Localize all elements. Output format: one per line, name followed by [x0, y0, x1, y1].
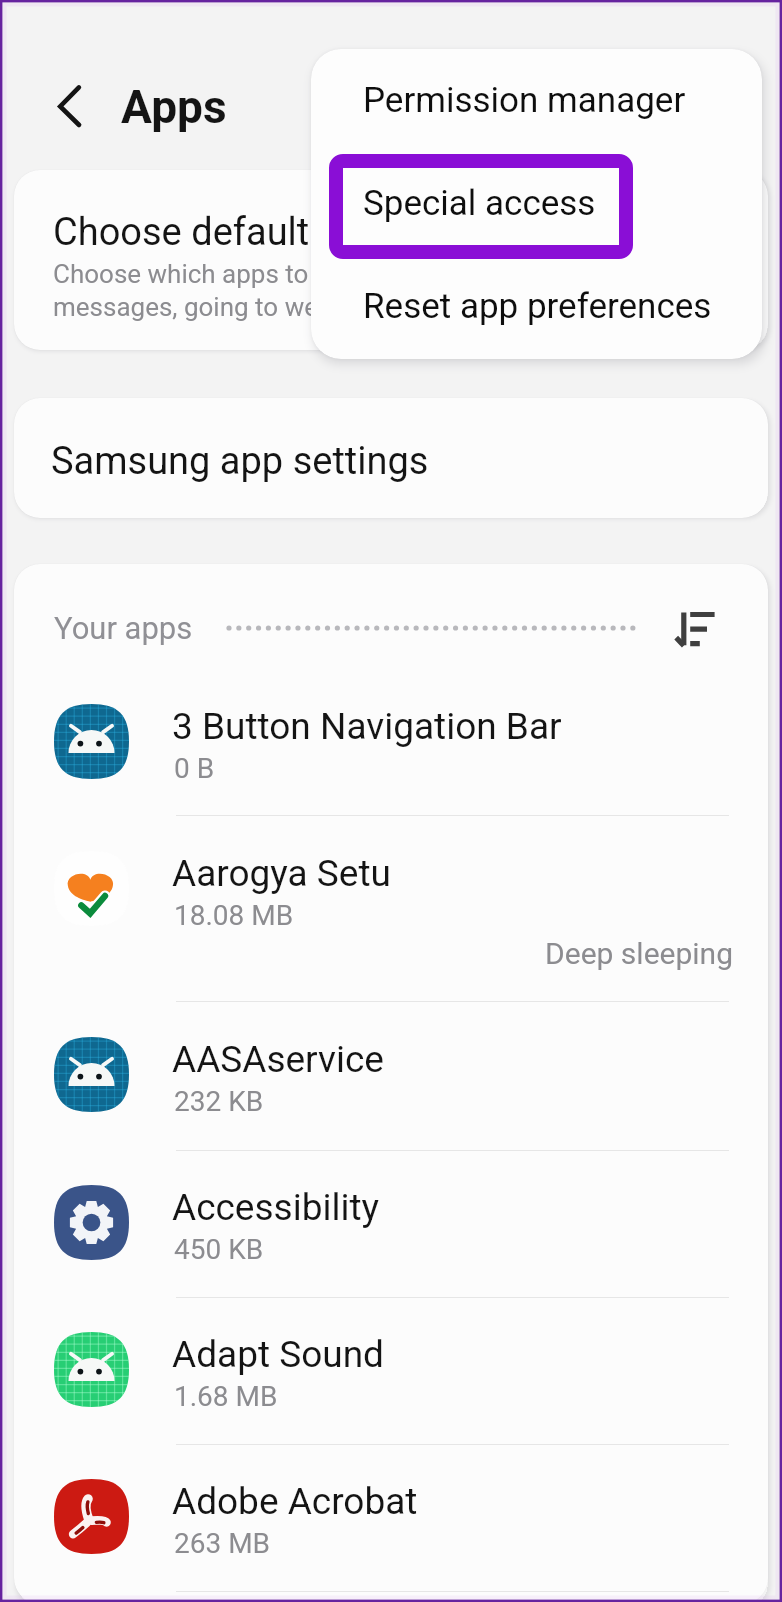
button[interactable]: Reset app preferences [311, 255, 762, 357]
button[interactable] [14, 1446, 768, 1591]
staticText: Permission manager [363, 80, 686, 121]
staticText: 18.08 MB [174, 899, 294, 932]
button[interactable] [14, 1004, 768, 1150]
button[interactable] [14, 1299, 768, 1444]
staticText: Aarogya Setu [172, 852, 391, 895]
staticText: Choose which apps to use by default for … [53, 259, 607, 322]
staticText: Adapt Sound [172, 1333, 384, 1376]
staticText: Samsung app settings [51, 439, 429, 484]
staticText: Reset app preferences [363, 286, 712, 327]
button[interactable] [14, 671, 768, 815]
staticText: 0 B [174, 752, 215, 785]
staticText: 232 KB [174, 1085, 264, 1118]
staticText: Choose default apps [53, 210, 402, 255]
button[interactable] [14, 1152, 768, 1297]
button[interactable]: Permission manager [311, 49, 762, 152]
staticText: 263 MB [174, 1527, 271, 1560]
staticText: Apps [121, 80, 227, 132]
staticText: Adobe Acrobat [172, 1480, 418, 1523]
button[interactable]: Back [54, 76, 106, 128]
staticText: Your apps [54, 610, 193, 646]
staticText: AASAservice [172, 1038, 384, 1081]
staticText: Accessibility [172, 1186, 380, 1229]
button[interactable]: Sort order [662, 599, 728, 657]
staticText: Special access [363, 183, 596, 224]
button[interactable]: Special access [311, 152, 762, 255]
button[interactable]: Choose default apps [14, 170, 768, 350]
button[interactable]: Samsung app settings [14, 398, 768, 518]
staticText: 1.68 MB [174, 1380, 278, 1413]
staticText: Deep sleeping [177, 936, 733, 971]
staticText: 3 Button Navigation Bar [172, 705, 562, 748]
staticText: 450 KB [174, 1233, 264, 1266]
button[interactable] [14, 818, 768, 1001]
